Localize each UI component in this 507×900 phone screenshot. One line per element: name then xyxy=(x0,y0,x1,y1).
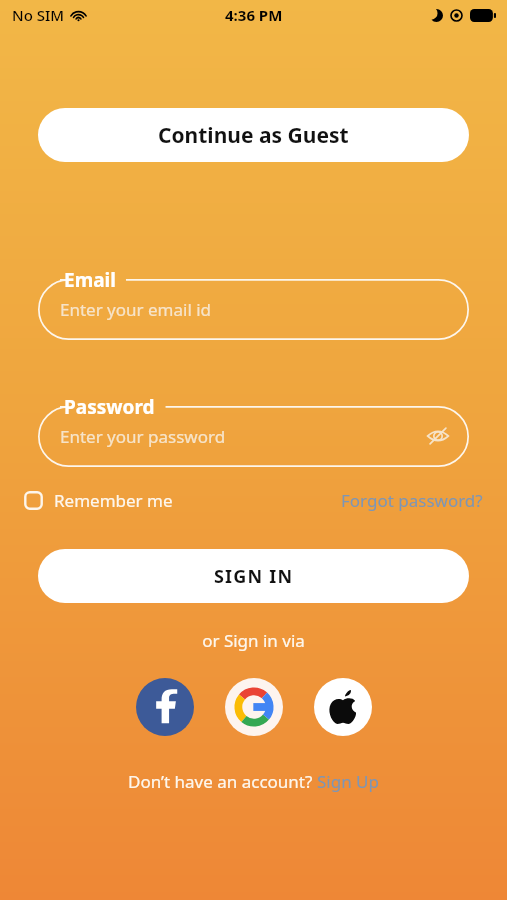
staticText: Enter your password xyxy=(60,425,226,448)
button[interactable]: Remember me xyxy=(24,489,173,512)
staticText: Enter your email id xyxy=(60,298,212,321)
button[interactable]: Email xyxy=(38,267,469,340)
staticText: Password xyxy=(64,394,155,420)
button[interactable]: Sign Up xyxy=(317,770,379,793)
button[interactable]: Show password xyxy=(421,419,455,453)
staticText: Continue as Guest xyxy=(158,121,349,150)
button[interactable]: Sign in with Apple xyxy=(314,678,372,736)
staticText: Remember me xyxy=(54,489,173,512)
staticText: No SIM xyxy=(12,5,65,25)
button[interactable]: Continue as Guest xyxy=(38,108,469,162)
button[interactable]: SIGN IN xyxy=(38,549,469,603)
button[interactable]: Sign in with Google xyxy=(225,678,283,736)
staticText: Sign Up xyxy=(317,770,379,793)
staticText: Forgot password? xyxy=(341,489,483,512)
button[interactable]: Sign in with Facebook xyxy=(136,678,194,736)
staticText: 4:36 PM xyxy=(225,5,283,25)
staticText: or Sign in via xyxy=(0,629,507,652)
staticText: Don’t have an account? xyxy=(128,770,317,793)
button[interactable]: Forgot password? xyxy=(341,489,483,512)
staticText: SIGN IN xyxy=(214,564,294,589)
button[interactable]: Password xyxy=(38,394,469,467)
staticText: Email xyxy=(64,267,116,293)
